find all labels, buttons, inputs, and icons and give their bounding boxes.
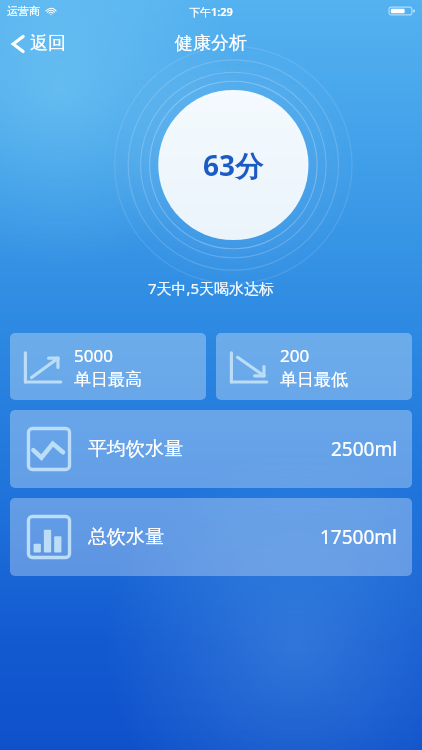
staticText: 总饮水量 <box>88 525 164 549</box>
other: 总量图表 <box>22 510 76 564</box>
staticText: 单日最低 <box>280 369 348 390</box>
button[interactable]: 返回 <box>0 28 80 59</box>
button[interactable]: 最低趋势 <box>216 333 412 400</box>
staticText: 健康分析 <box>175 32 247 55</box>
button[interactable]: 最高趋势 <box>10 333 206 400</box>
staticText: 17500ml <box>320 524 398 550</box>
staticText: 2500ml <box>331 436 398 462</box>
staticText: 单日最高 <box>74 369 142 390</box>
other: 最高趋势 <box>21 345 65 389</box>
staticText: 5000 <box>74 344 113 367</box>
staticText: 7天中,5天喝水达标 <box>0 278 422 298</box>
staticText: 运营商 <box>7 4 40 18</box>
staticText: 平均饮水量 <box>88 437 183 461</box>
staticText: 下午1:29 <box>189 4 233 19</box>
button[interactable]: 总量图表 <box>10 498 412 576</box>
other: 最低趋势 <box>227 345 271 389</box>
staticText: 返回 <box>30 32 66 55</box>
staticText: 200 <box>280 344 310 367</box>
staticText: 63分 <box>203 146 264 184</box>
other: 平均值图表 <box>22 422 76 476</box>
button[interactable]: 平均值图表 <box>10 410 412 488</box>
